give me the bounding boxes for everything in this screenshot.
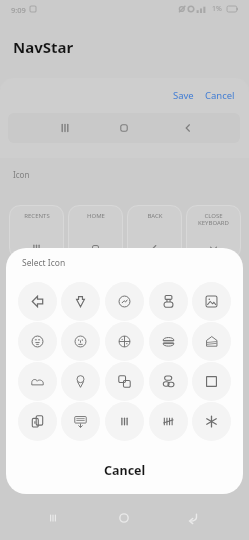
staticText: Save	[173, 89, 194, 102]
button[interactable]: Burger	[149, 322, 188, 361]
button[interactable]: Cancel	[201, 86, 239, 105]
button[interactable]: HOME	[68, 205, 123, 259]
button[interactable]: BACK	[127, 205, 182, 259]
button[interactable]: Left arrow	[18, 282, 57, 321]
staticText: BACK	[147, 212, 163, 220]
button[interactable]: Save	[169, 86, 198, 105]
button[interactable]: Cake	[192, 322, 231, 361]
button[interactable]: Ice cream	[61, 362, 100, 401]
button[interactable]: Speaker	[18, 402, 57, 441]
staticText: 9:09	[11, 5, 26, 15]
button[interactable]: Cloud	[18, 362, 57, 401]
button[interactable]: Pizza	[105, 322, 144, 361]
button[interactable]: Tally	[149, 402, 188, 441]
staticText: CLOSE KEYBOARD	[198, 212, 229, 227]
button[interactable]: Smiley	[18, 322, 57, 361]
button[interactable]: Recents	[41, 506, 65, 530]
button[interactable]: Home	[112, 506, 136, 530]
button[interactable]: Asterisk	[192, 402, 231, 441]
button[interactable]: Back	[180, 506, 204, 530]
staticText: Cancel	[205, 89, 235, 102]
button[interactable]: Face	[61, 322, 100, 361]
button[interactable]: Clock	[105, 282, 144, 321]
staticText: HOME	[87, 212, 105, 220]
button[interactable]: Copy	[105, 362, 144, 401]
button[interactable]: Cancel	[6, 446, 243, 494]
staticText: RECENTS	[24, 212, 50, 220]
button[interactable]: Square	[192, 362, 231, 401]
staticText: 1%	[212, 4, 222, 14]
staticText: Icon	[13, 169, 30, 180]
button[interactable]: CLOSE KEYBOARD	[186, 205, 241, 259]
button[interactable]: RECENTS	[9, 205, 64, 259]
button[interactable]: Coins	[149, 362, 188, 401]
staticText: NavStar	[13, 37, 74, 57]
button[interactable]: Hide keyboard	[61, 402, 100, 441]
button[interactable]: Bottle	[149, 282, 188, 321]
button[interactable]: Recents	[105, 402, 144, 441]
button[interactable]: Photo	[192, 282, 231, 321]
button[interactable]: Down arrow	[61, 282, 100, 321]
staticText: Select Icon	[22, 257, 66, 269]
staticText: Cancel	[104, 462, 146, 479]
